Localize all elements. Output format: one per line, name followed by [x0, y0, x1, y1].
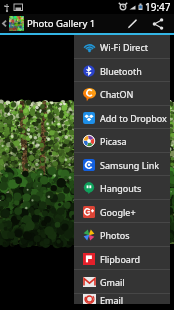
button[interactable]: Wi-Fi Direct: [74, 35, 170, 59]
button[interactable]: Share: [142, 14, 174, 33]
staticText: Hangouts: [100, 182, 142, 194]
button[interactable]: Flipboard: [74, 247, 170, 270]
button[interactable]: Picasa: [74, 129, 170, 153]
staticText: Bluetooth: [100, 65, 142, 77]
button[interactable]: Edit: [121, 14, 142, 33]
staticText: Gmail: [100, 276, 125, 288]
staticText: Picasa: [100, 135, 127, 147]
staticText: Google+: [100, 206, 136, 218]
staticText: 19:47: [145, 0, 171, 14]
button[interactable]: Hangouts: [74, 176, 170, 200]
button[interactable]: Bluetooth: [74, 59, 170, 82]
staticText: Photo Gallery 1: [27, 17, 96, 30]
button[interactable]: ChatON: [74, 82, 170, 106]
staticText: Flipboard: [100, 253, 140, 265]
button[interactable]: Email: [74, 294, 170, 304]
button[interactable]: Gmail: [74, 270, 170, 294]
staticText: Samsung Link: [100, 159, 160, 171]
staticText: Wi-Fi Direct: [100, 41, 148, 53]
staticText: Photos: [100, 229, 130, 241]
staticText: ChatON: [100, 88, 134, 100]
staticText: Email: [100, 294, 124, 304]
staticText: Add to Dropbox: [100, 112, 167, 124]
button[interactable]: Photos: [74, 223, 170, 247]
button[interactable]: Add to Dropbox: [74, 106, 170, 129]
button[interactable]: Google+: [74, 200, 170, 223]
button[interactable]: Samsung Link: [74, 153, 170, 176]
button[interactable]: Back: [0, 14, 9, 33]
